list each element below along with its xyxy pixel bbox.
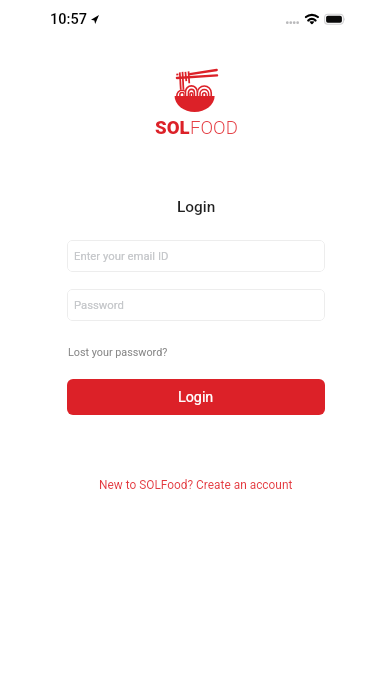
staticText: Login: [178, 389, 214, 406]
button[interactable]: Enter your email ID: [67, 240, 325, 272]
staticText: FOOD: [190, 117, 238, 139]
staticText: SOL: [155, 117, 190, 139]
staticText: Lost your password?: [68, 346, 168, 359]
staticText: Password: [74, 299, 124, 312]
staticText: Login: [177, 198, 216, 216]
staticText: Enter your email ID: [74, 250, 169, 263]
staticText: 10:57: [50, 11, 88, 28]
button[interactable]: Lost your password?: [64, 341, 172, 364]
button[interactable]: New to SOLFood? Create an account: [91, 472, 301, 498]
other: SOL FOOD logo: [164, 63, 228, 113]
button[interactable]: Login: [67, 379, 325, 415]
staticText: New to SOLFood? Create an account: [99, 478, 293, 492]
button[interactable]: Password: [67, 289, 325, 321]
